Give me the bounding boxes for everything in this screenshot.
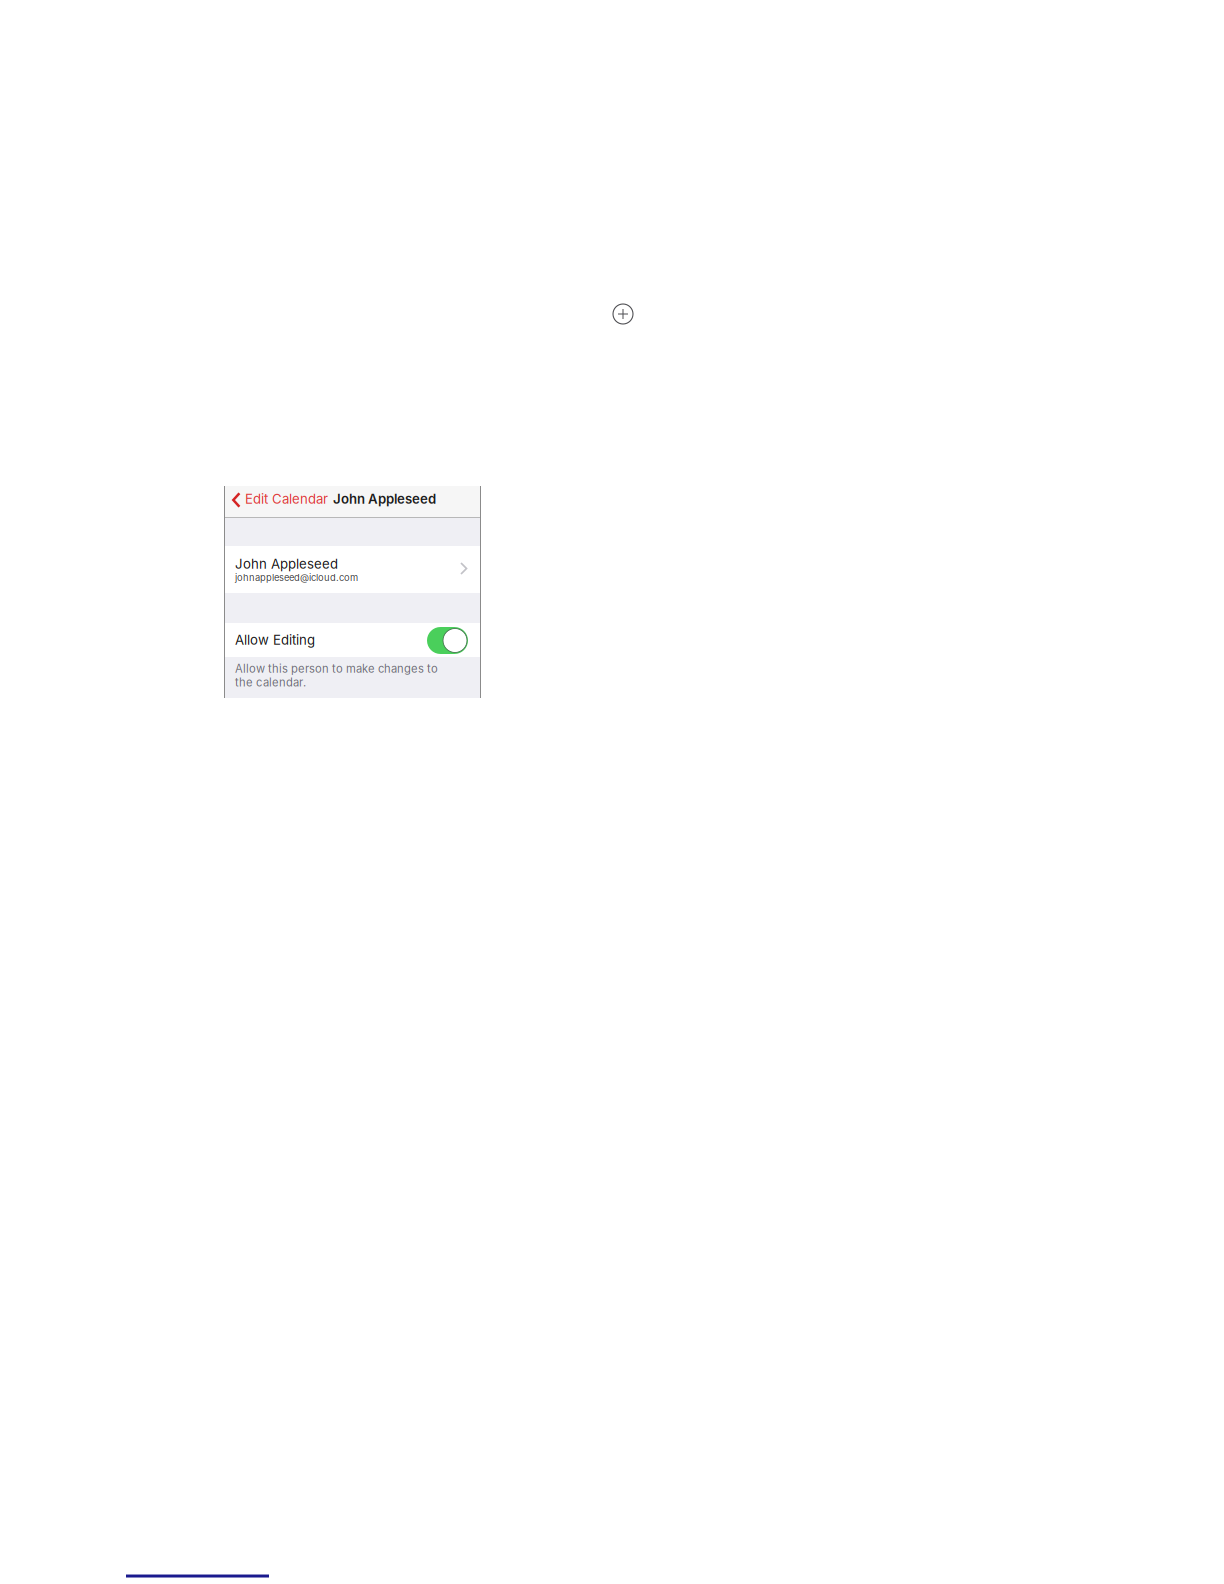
staticText: johnappleseed@icloud.com	[235, 572, 358, 583]
button[interactable]: John Appleseed	[224, 546, 481, 593]
button[interactable]: Allow Editing	[224, 623, 481, 657]
button[interactable]: Add	[610, 301, 636, 327]
button[interactable]: Edit Calendar	[224, 486, 481, 517]
staticText: John Appleseed	[235, 556, 338, 572]
staticText: Allow Editing	[235, 632, 315, 648]
staticText: Edit Calendar	[245, 491, 328, 507]
staticText: John Appleseed	[333, 491, 436, 507]
button[interactable]: Link	[126, 1560, 269, 1577]
staticText: Allow this person to make changes to the…	[235, 662, 438, 689]
